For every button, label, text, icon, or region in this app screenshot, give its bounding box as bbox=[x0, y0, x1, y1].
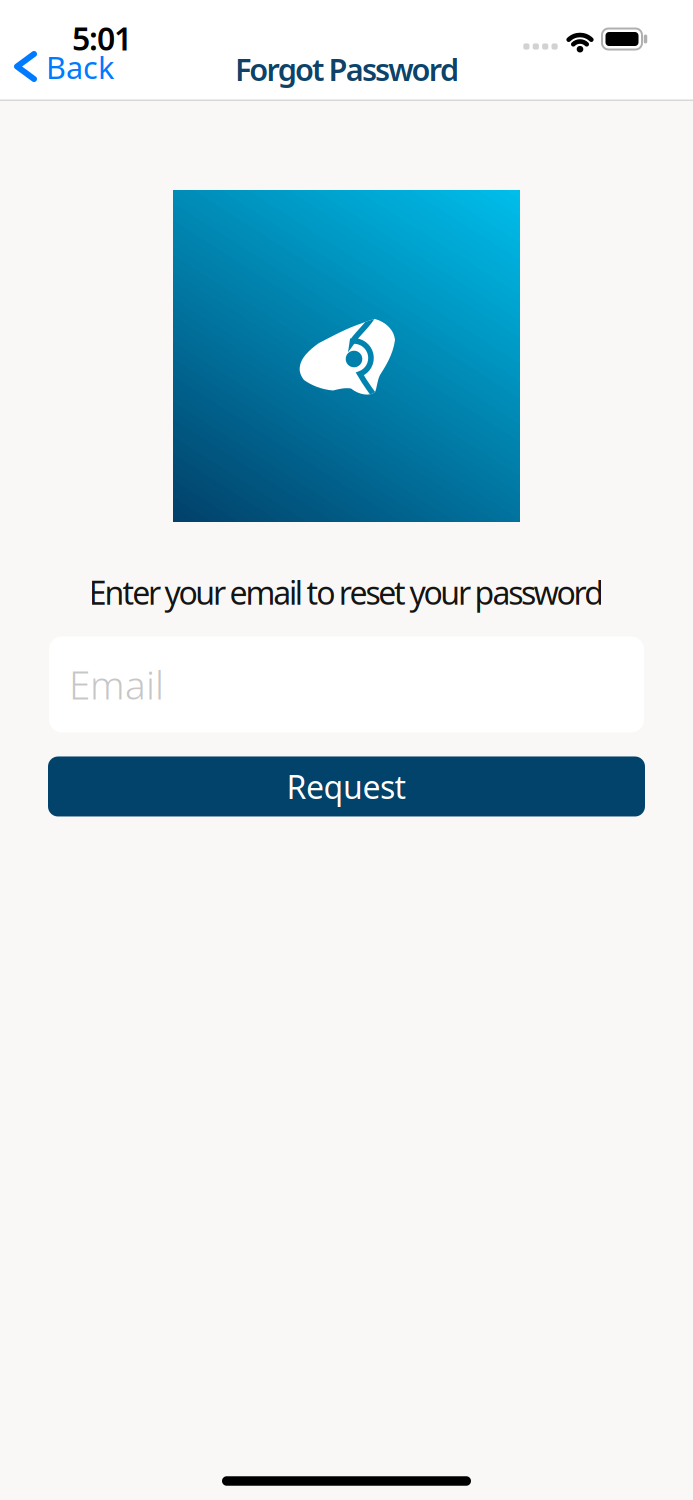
staticText: Enter your email to reset your password bbox=[89, 571, 604, 613]
staticText: Forgot Password bbox=[235, 49, 459, 89]
button[interactable]: Request bbox=[48, 756, 645, 816]
staticText: Email bbox=[69, 659, 164, 710]
staticText: 5:01 bbox=[72, 17, 132, 59]
button[interactable]: Back bbox=[14, 47, 114, 87]
staticText: Back bbox=[46, 47, 114, 87]
staticText: Request bbox=[286, 765, 406, 808]
button[interactable]: Email bbox=[49, 636, 644, 732]
